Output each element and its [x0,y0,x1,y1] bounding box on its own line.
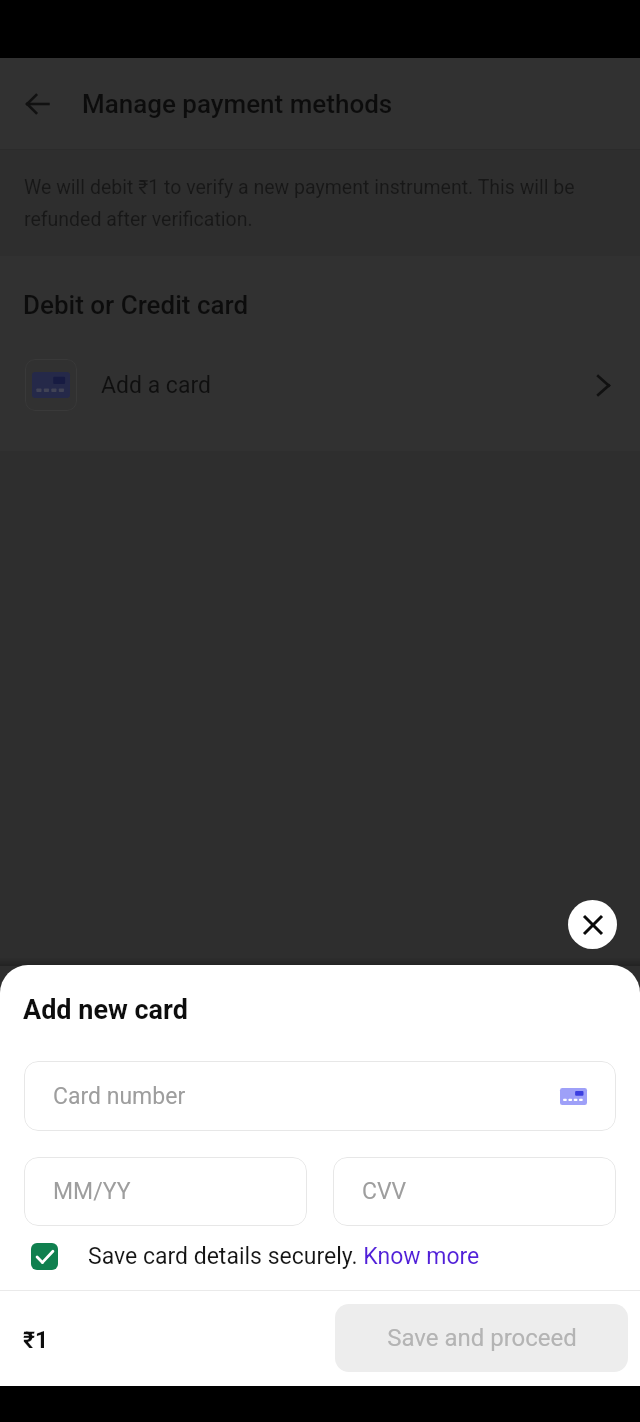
button[interactable]: Back [0,58,75,149]
staticText: Add a card [101,372,211,399]
staticText: Save card details securely. Know more [88,1243,480,1270]
button[interactable]: Card number [24,1061,616,1131]
staticText: ₹1 [23,1327,49,1354]
staticText: We will debit ₹1 to verify a new payment… [24,176,594,231]
staticText: Card number [53,1083,186,1110]
staticText: CVV [362,1178,407,1205]
staticText: Debit or Credit card [23,290,249,320]
button[interactable]: Add a card [0,347,640,423]
button[interactable]: Close [568,900,617,949]
staticText: Manage payment methods [82,89,393,119]
button[interactable]: CVV [333,1157,616,1226]
staticText: Add new card [23,994,188,1026]
button[interactable]: MM/YY [24,1157,307,1226]
button[interactable]: Back [0,58,640,149]
staticText: Save and proceed [387,1324,577,1352]
staticText: MM/YY [53,1178,131,1205]
button[interactable]: Save card details securely. Know more [0,1233,640,1279]
button[interactable]: Save and proceed [335,1304,628,1372]
